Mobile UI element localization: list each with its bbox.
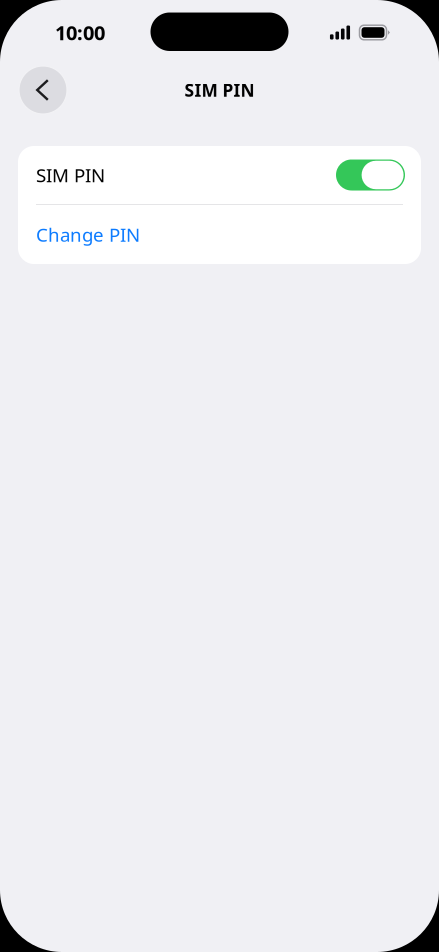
staticText: 10:00 (55, 19, 105, 46)
button[interactable]: Back (19, 66, 67, 114)
staticText: SIM PIN (184, 78, 254, 101)
button[interactable]: Change PIN (18, 205, 421, 264)
staticText: SIM PIN (36, 163, 105, 187)
button[interactable]: SIM PIN (18, 146, 421, 204)
staticText: Change PIN (36, 222, 140, 247)
